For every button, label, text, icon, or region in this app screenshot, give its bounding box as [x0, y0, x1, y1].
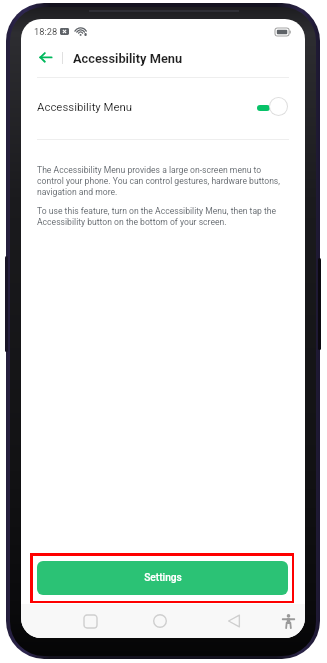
staticText: Settings: [144, 572, 182, 584]
button[interactable]: Recents: [80, 611, 100, 631]
staticText: To use this feature, turn on the Accessi…: [37, 206, 289, 227]
staticText: Accessibility Menu: [37, 100, 133, 113]
button[interactable]: Back: [223, 611, 243, 631]
button[interactable]: Accessibility: [278, 611, 299, 632]
staticText: Accessibility Menu: [73, 51, 183, 66]
button[interactable]: Settings: [37, 561, 288, 595]
button[interactable]: Back: [37, 47, 54, 69]
staticText: 18:28: [34, 26, 58, 37]
button[interactable]: Home: [150, 611, 170, 631]
staticText: The Accessibility Menu provides a large …: [37, 165, 289, 197]
button[interactable]: Accessibility Menu: [21, 76, 305, 137]
